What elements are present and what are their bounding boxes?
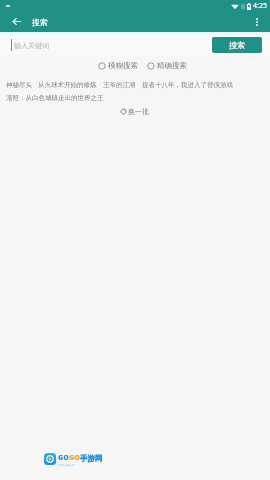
- button[interactable]: 捉者十八年，我进入了替侠游戏: [142, 81, 233, 89]
- staticText: GO: [69, 453, 80, 463]
- button[interactable]: 搜索: [212, 37, 262, 53]
- button[interactable]: More options: [246, 11, 267, 32]
- button[interactable]: 从火球术开始的修炼: [38, 81, 97, 89]
- staticText: 4:25: [253, 1, 267, 11]
- staticText: 换一批: [128, 107, 149, 116]
- button[interactable]: 渐照：从白色城镇走出的世界之王: [6, 94, 104, 102]
- staticText: 手游网: [80, 454, 103, 463]
- button[interactable]: 王爷的江湖: [103, 81, 136, 89]
- button[interactable]: Back: [5, 11, 28, 32]
- button[interactable]: 精确搜索: [147, 61, 187, 70]
- staticText: 模糊搜索: [108, 61, 138, 70]
- staticText: 搜索: [229, 40, 245, 50]
- staticText: www.gogo.cn: [58, 463, 75, 467]
- staticText: 搜索: [32, 17, 48, 27]
- staticText: 输入关键词: [14, 41, 49, 50]
- button[interactable]: 模糊搜索: [98, 61, 138, 70]
- staticText: GO: [58, 453, 69, 463]
- staticText: 精确搜索: [157, 61, 187, 70]
- button[interactable]: 换一批: [120, 107, 149, 116]
- button[interactable]: 神秘尽头: [6, 81, 32, 89]
